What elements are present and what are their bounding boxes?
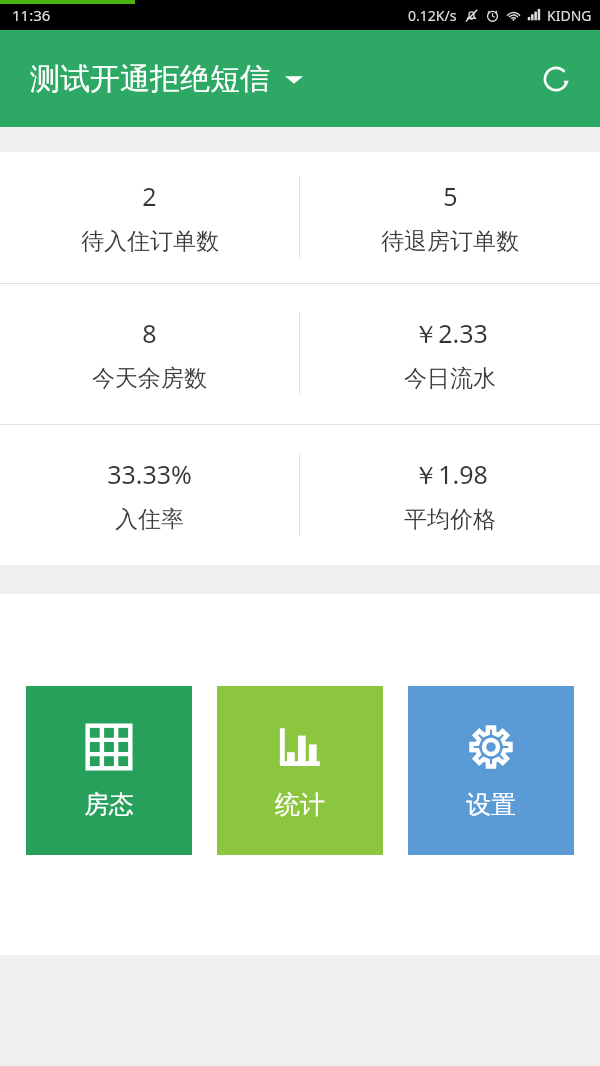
staticText: ￥1.98 (413, 457, 488, 491)
staticText: 测试开通拒绝短信 (30, 60, 270, 98)
button[interactable]: ￥2.33 (300, 284, 600, 424)
button[interactable]: 测试开通拒绝短信 (30, 60, 304, 98)
staticText: 今日流水 (404, 364, 496, 393)
staticText: 11:36 (12, 5, 51, 25)
staticText: 房态 (84, 789, 134, 820)
staticText: 统计 (275, 789, 325, 820)
button[interactable]: 房态 (26, 686, 192, 855)
staticText: ￥2.33 (413, 316, 488, 350)
button[interactable]: 统计 (217, 686, 383, 855)
staticText: 8 (142, 316, 157, 350)
button[interactable]: ￥1.98 (300, 425, 600, 565)
button[interactable]: 8 (0, 284, 299, 424)
staticText: KIDNG (547, 6, 592, 25)
button[interactable]: 33.33% (0, 425, 299, 565)
button[interactable]: Refresh (530, 53, 582, 105)
button[interactable]: 2 (0, 152, 299, 283)
staticText: 33.33% (107, 457, 192, 491)
staticText: 2 (142, 179, 157, 213)
staticText: 待退房订单数 (381, 227, 519, 256)
staticText: 5 (443, 179, 458, 213)
staticText: 入住率 (115, 505, 184, 534)
button[interactable]: 设置 (408, 686, 574, 855)
staticText: 今天余房数 (92, 364, 207, 393)
staticText: 待入住订单数 (81, 227, 219, 256)
staticText: 设置 (466, 789, 516, 820)
staticText: 平均价格 (404, 505, 496, 534)
staticText: 0.12K/s (408, 6, 457, 25)
button[interactable]: 5 (300, 152, 600, 283)
